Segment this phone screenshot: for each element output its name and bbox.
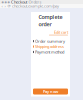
staticText: Pay now — [43, 89, 58, 94]
staticText: Orders — [28, 0, 41, 5]
staticText: Shipping address — [35, 44, 64, 49]
staticText: ‹ › ⟳ — [1, 3, 10, 9]
staticText: Checkout — [11, 0, 27, 5]
staticText: checkout.example.com/pay — [12, 3, 59, 9]
staticText: Order summary — [35, 38, 65, 44]
button[interactable]: Pay now — [33, 88, 68, 94]
staticText: ● ● ● — [1, 0, 9, 3]
button[interactable]: Edit cart — [33, 31, 68, 34]
staticText: Complete order — [38, 13, 62, 28]
staticText: Edit cart — [54, 29, 68, 35]
staticText: Payment method — [35, 49, 64, 55]
